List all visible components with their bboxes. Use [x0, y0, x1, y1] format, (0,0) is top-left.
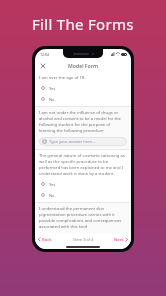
- staticText: Next: [114, 237, 124, 243]
- staticText: Model Form: [68, 62, 98, 69]
- staticText: The general nature of cosmetic tattooing…: [39, 153, 127, 177]
- staticText: Fill The Forms: [32, 14, 134, 34]
- staticText: Back: [42, 237, 52, 243]
- staticText: Item 3 of 4: [73, 237, 94, 242]
- button[interactable]: Back: [35, 235, 55, 244]
- button[interactable]: Yes: [39, 180, 127, 188]
- button[interactable]: Close: [38, 61, 48, 71]
- button[interactable]: Next: [111, 235, 131, 244]
- button[interactable]: Yes: [39, 84, 127, 92]
- button[interactable]: No: [39, 191, 127, 199]
- staticText: I am over the age of 18.: [39, 75, 86, 81]
- staticText: 12:04: [40, 52, 49, 57]
- staticText: Type your answer here...: [49, 139, 96, 144]
- staticText: I am not under the influence of drugs or…: [39, 110, 127, 134]
- staticText: Yes: [49, 182, 56, 187]
- staticText: I understood the permanent skin pigmenta…: [39, 206, 127, 230]
- staticText: No: [49, 97, 55, 102]
- staticText: No: [49, 193, 55, 198]
- button[interactable]: Type your answer here...: [39, 137, 127, 146]
- button[interactable]: No: [39, 95, 127, 103]
- staticText: Yes: [49, 86, 56, 91]
